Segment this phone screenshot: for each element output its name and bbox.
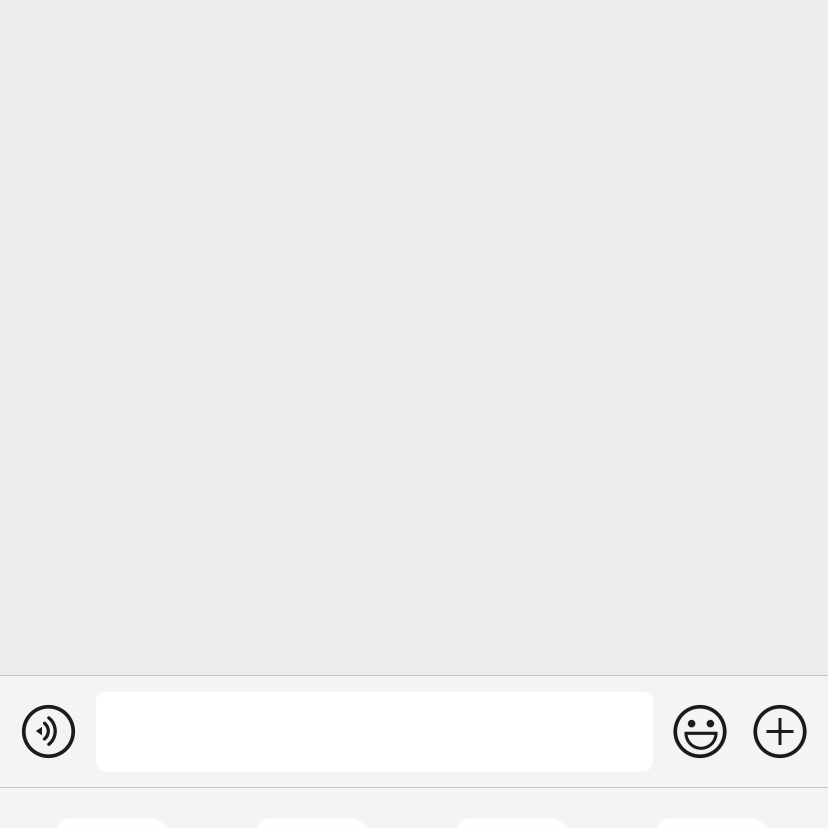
button[interactable]: Emoji [673,676,727,787]
button[interactable]: More options [753,676,807,787]
button[interactable]: Audio message [21,676,75,787]
